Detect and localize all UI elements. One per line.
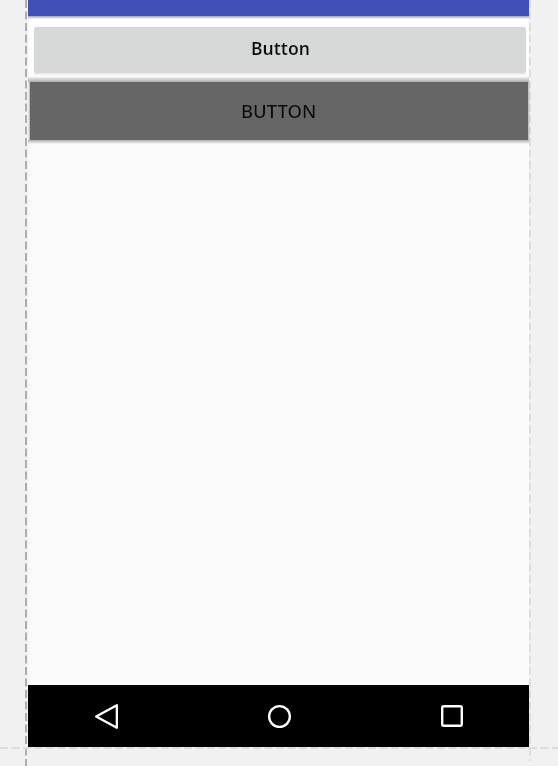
- button[interactable]: Button: [34, 27, 526, 73]
- staticText: BUTTON: [241, 98, 317, 123]
- button[interactable]: Recents: [372, 685, 529, 747]
- staticText: Button: [251, 36, 310, 60]
- button[interactable]: Home: [185, 685, 372, 747]
- button[interactable]: Back: [28, 685, 185, 747]
- button[interactable]: BUTTON: [30, 82, 528, 140]
